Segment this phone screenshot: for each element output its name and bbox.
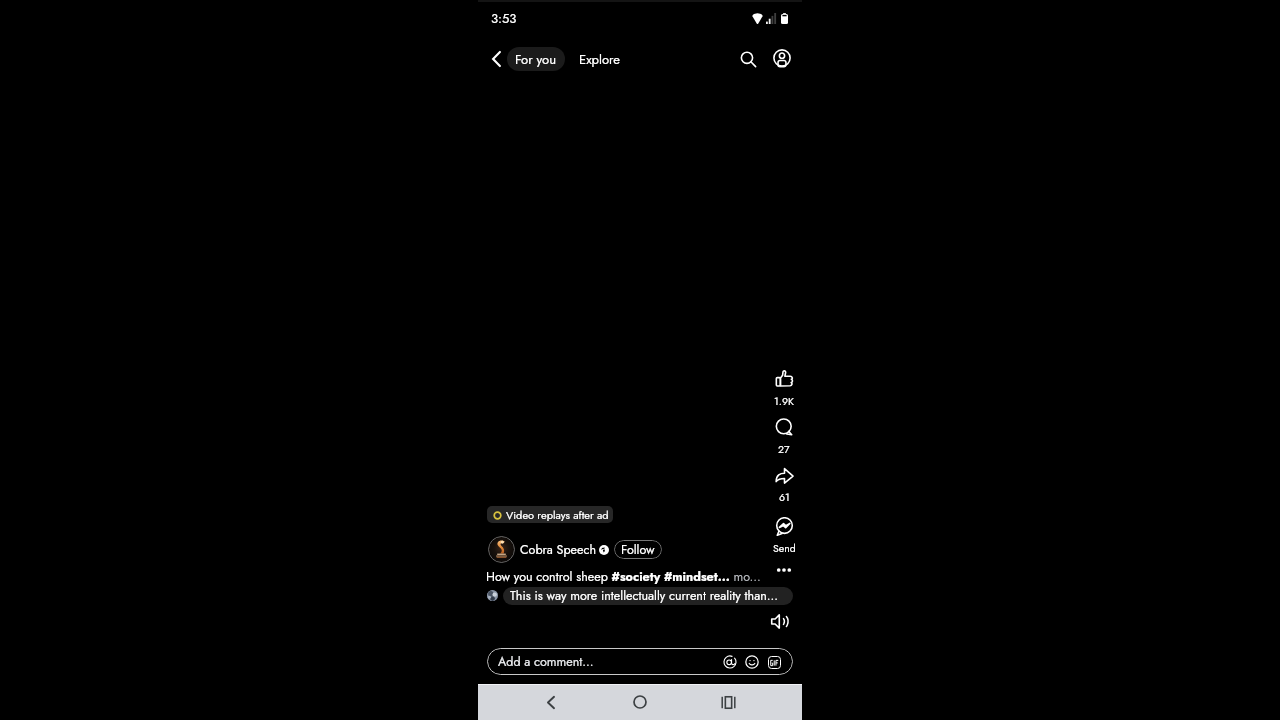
button[interactable]: Send (768, 517, 800, 556)
button[interactable]: Explore (573, 47, 627, 71)
staticText: How you control sheep #society #mindset.… (486, 568, 761, 586)
button[interactable]: Profile (769, 45, 795, 71)
staticText: Send (773, 541, 796, 556)
button[interactable]: For you (507, 47, 565, 71)
button[interactable]: Cobra Speech (520, 541, 596, 559)
staticText: Explore (579, 50, 621, 69)
button[interactable]: Comment (768, 418, 800, 457)
button[interactable]: Sound on (769, 610, 791, 632)
button[interactable]: Back (533, 684, 569, 720)
button[interactable]: More options (773, 559, 795, 581)
staticText: Add a comment... (498, 653, 594, 671)
button[interactable]: Emoji (743, 653, 761, 671)
staticText: Video replays after ad (506, 507, 609, 523)
staticText: Follow (621, 541, 655, 559)
button[interactable]: Cobra Speech profile picture (488, 536, 515, 563)
button[interactable]: GIF (765, 653, 783, 671)
button[interactable]: Share (768, 466, 800, 505)
button[interactable]: Back (484, 47, 508, 71)
staticText: 3:53 (491, 9, 517, 28)
staticText: Cobra Speech (520, 541, 596, 559)
staticText: 1.9K (774, 394, 794, 409)
button[interactable]: Add a comment... (487, 648, 793, 675)
button[interactable]: Search (735, 46, 761, 72)
staticText: 61 (779, 490, 790, 505)
button[interactable]: Home (622, 684, 658, 720)
button[interactable]: Follow (614, 540, 662, 559)
button[interactable]: Video replays after ad (487, 506, 613, 523)
button[interactable]: This is way more intellectually current … (503, 587, 793, 605)
staticText: This is way more intellectually current … (510, 587, 778, 605)
staticText: For you (515, 50, 557, 69)
button[interactable]: Mention (721, 653, 739, 671)
button[interactable]: Like (768, 370, 800, 409)
button[interactable]: Recent apps (710, 684, 746, 720)
staticText: 27 (778, 442, 790, 457)
button[interactable]: How you control sheep #society #mindset.… (486, 568, 771, 586)
